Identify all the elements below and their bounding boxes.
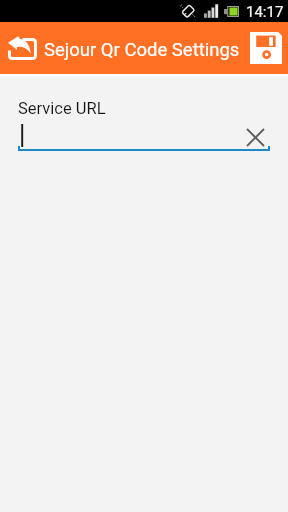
staticText: Service URL [18, 99, 106, 118]
button[interactable]: Save [246, 28, 286, 68]
button[interactable]: Clear [241, 123, 269, 151]
button[interactable]: Back [3, 29, 41, 67]
staticText: Sejour Qr Code Settings [44, 39, 240, 61]
staticText: 14:17 [246, 3, 284, 21]
